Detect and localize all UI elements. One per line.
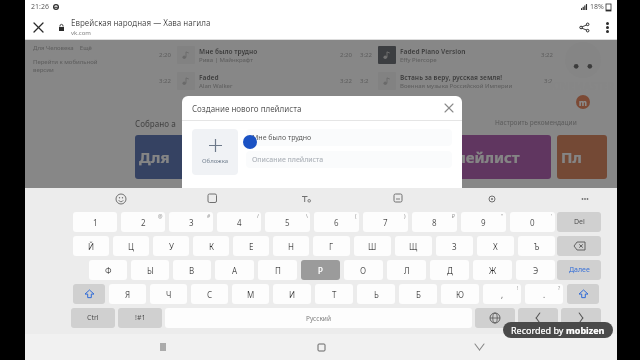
button[interactable]: 1 (73, 212, 117, 232)
button[interactable]: Ч (150, 284, 187, 304)
button[interactable]: Ь (357, 284, 395, 304)
staticText: 7 (383, 217, 388, 228)
button[interactable]: Обложка (192, 129, 238, 175)
button[interactable]: 9 (461, 212, 506, 232)
button[interactable]: А (215, 260, 254, 280)
staticText: Русский (306, 314, 331, 323)
staticText: З (452, 241, 457, 252)
staticText: Рива | Майнкрафт (199, 56, 254, 64)
button[interactable]: З (436, 236, 473, 256)
button[interactable]: Settings (482, 189, 502, 209)
button[interactable]: Ю (441, 284, 479, 304)
button[interactable]: Р (301, 260, 340, 280)
staticText: # (207, 213, 211, 220)
staticText: mobizen (566, 324, 605, 336)
button[interactable]: Text mode (296, 189, 316, 209)
button[interactable]: 3:22 (360, 42, 553, 68)
button[interactable]: Ш (354, 236, 391, 256)
staticText: Ы (147, 265, 154, 276)
button[interactable]: В (173, 260, 211, 280)
button[interactable]: Shift (73, 284, 105, 304)
button[interactable]: Ц (113, 236, 149, 256)
button[interactable]: Ъ (518, 236, 555, 256)
button[interactable]: 4 (217, 212, 261, 232)
staticText: П (275, 265, 281, 276)
button[interactable]: 2 (121, 212, 165, 232)
button[interactable]: Д (430, 260, 469, 280)
button[interactable]: Shift (567, 284, 599, 304)
button[interactable]: Ctrl (71, 308, 115, 328)
button[interactable]: Del (557, 212, 601, 232)
button[interactable]: Б (399, 284, 437, 304)
button[interactable]: Л (387, 260, 426, 280)
staticText: vk.com (71, 29, 91, 37)
button[interactable]: Close dialog (440, 99, 458, 117)
button[interactable]: 5 (265, 212, 310, 232)
button[interactable]: П (258, 260, 297, 280)
button[interactable]: 7 (363, 212, 408, 232)
button[interactable]: Русский (165, 308, 472, 328)
button[interactable]: 3 (169, 212, 213, 232)
button[interactable]: Далее (557, 260, 601, 280)
staticText: К (209, 241, 214, 252)
staticText: 0 (530, 217, 535, 228)
button[interactable]: Г (313, 236, 350, 256)
button[interactable]: !#1 (118, 308, 162, 328)
button[interactable]: Пл (557, 135, 607, 179)
button[interactable]: Я (109, 284, 146, 304)
button[interactable]: О (344, 260, 383, 280)
staticText: У (169, 241, 174, 252)
button[interactable]: Change language (475, 308, 515, 328)
button[interactable]: 3:22 (159, 68, 352, 94)
button[interactable]: Для (135, 135, 215, 179)
button[interactable]: Е (233, 236, 269, 256)
button[interactable]: Мне было трудно (246, 129, 452, 146)
button[interactable]: Emoji (111, 189, 131, 209)
button[interactable]: Stickers (203, 189, 223, 209)
button[interactable]: Share (571, 14, 597, 40)
button[interactable]: 0 (510, 212, 555, 232)
button[interactable]: У (153, 236, 189, 256)
button[interactable]: 3:2 (360, 68, 553, 94)
button[interactable]: Ж (473, 260, 512, 280)
button[interactable]: Previous (518, 308, 558, 328)
button[interactable]: 8 (412, 212, 457, 232)
button[interactable]: Описание плейлиста (246, 151, 452, 168)
button[interactable]: Back (459, 334, 499, 360)
button[interactable]: Ф (89, 260, 127, 280)
staticText: С (207, 289, 213, 300)
button[interactable]: Й (73, 236, 109, 256)
button[interactable]: Э (516, 260, 555, 280)
staticText: Ctrl (87, 313, 99, 323)
staticText: Effy Piercope (400, 56, 437, 64)
button[interactable]: Х (477, 236, 514, 256)
button[interactable]: Backspace (557, 236, 601, 256)
staticText: Перейти к мобильной (33, 58, 98, 66)
staticText: 3:22 (340, 77, 352, 85)
button[interactable]: К (193, 236, 229, 256)
button[interactable]: И (273, 284, 311, 304)
staticText: Для Человека Ещё (33, 44, 92, 52)
button[interactable]: М (232, 284, 269, 304)
staticText: Del (574, 217, 585, 227)
button[interactable]: 6 (314, 212, 359, 232)
button[interactable]: 2:20 (159, 42, 352, 68)
button[interactable]: Н (273, 236, 309, 256)
button[interactable]: Next (561, 308, 601, 328)
button[interactable]: Плейлист (441, 135, 551, 179)
button[interactable]: Close (25, 14, 51, 40)
button[interactable]: Т (315, 284, 353, 304)
button[interactable]: Ы (131, 260, 169, 280)
button[interactable]: Translate (389, 189, 409, 209)
staticText: Еврейская народная — Хава нагила (71, 17, 211, 28)
button[interactable]: More (575, 189, 595, 209)
button[interactable]: Recents (143, 334, 183, 360)
button[interactable]: С (191, 284, 228, 304)
button[interactable]: More options (597, 14, 617, 40)
button[interactable]: . (525, 284, 563, 304)
button[interactable]: Home (301, 334, 341, 360)
button[interactable]: , (483, 284, 521, 304)
button[interactable]: Щ (395, 236, 432, 256)
staticText: / (257, 213, 259, 220)
staticText: Для (139, 147, 170, 167)
